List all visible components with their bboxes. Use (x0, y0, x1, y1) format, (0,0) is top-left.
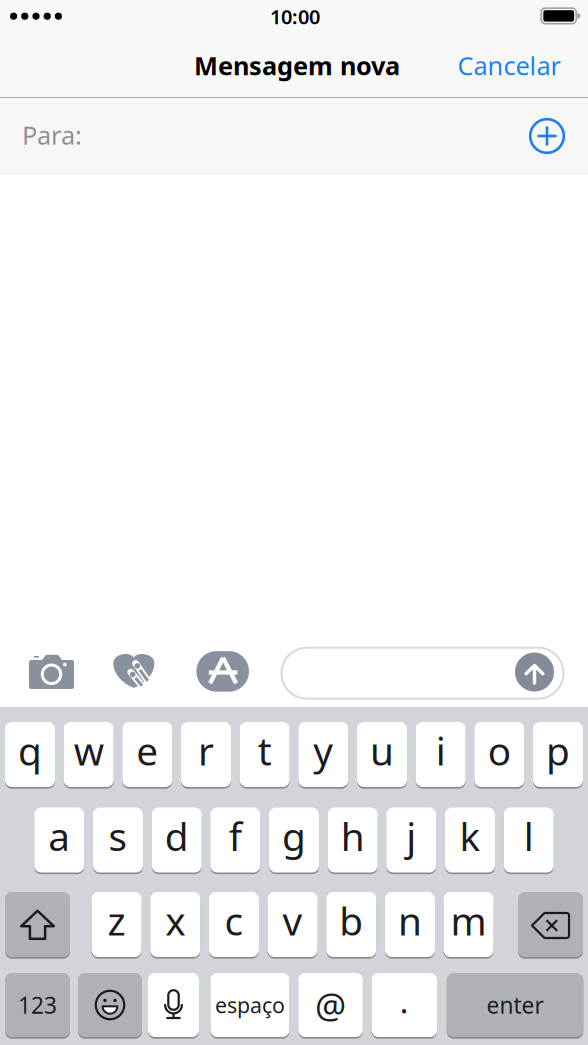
button[interactable]: q (5, 721, 55, 788)
button[interactable]: o (474, 721, 524, 788)
button[interactable]: Emoji (78, 972, 142, 1038)
button[interactable]: u (357, 721, 407, 788)
staticText: 10:00 (270, 3, 320, 30)
staticText: l (524, 810, 534, 862)
staticText: @ (315, 982, 346, 1028)
staticText: a (48, 810, 70, 862)
button[interactable]: z (92, 891, 142, 958)
button[interactable]: Camera (23, 644, 79, 700)
staticText: Cancelar (457, 49, 560, 82)
staticText: o (488, 725, 511, 776)
staticText: j (406, 810, 416, 862)
button[interactable]: l (504, 806, 554, 873)
staticText: p (546, 725, 570, 776)
button[interactable]: n (385, 891, 435, 958)
staticText: u (370, 725, 394, 776)
button[interactable]: r (181, 721, 231, 788)
button[interactable]: h (328, 806, 378, 873)
button[interactable]: enter (447, 972, 583, 1038)
staticText: espaço (215, 991, 285, 1019)
staticText: enter (486, 990, 543, 1020)
staticText: h (341, 810, 365, 862)
staticText: b (339, 895, 363, 946)
button[interactable]: g (269, 806, 319, 873)
staticText: 123 (18, 990, 57, 1020)
staticText: Para: (22, 118, 82, 152)
button[interactable]: s (93, 806, 143, 873)
button[interactable]: d (152, 806, 202, 873)
button[interactable]: f (210, 806, 260, 873)
button[interactable]: m (444, 891, 494, 958)
staticText: m (451, 895, 487, 946)
button[interactable]: y (298, 721, 348, 788)
staticText: t (258, 725, 272, 776)
button[interactable]: e (122, 721, 172, 788)
staticText: k (459, 810, 480, 862)
button[interactable]: p (533, 721, 583, 788)
button[interactable]: espaço (210, 972, 289, 1038)
button[interactable]: x (150, 891, 200, 958)
button[interactable]: j (386, 806, 436, 873)
staticText: r (198, 725, 214, 776)
button[interactable]: t (240, 721, 290, 788)
staticText: e (136, 725, 158, 776)
staticText: d (165, 810, 189, 862)
button[interactable]: v (268, 891, 318, 958)
staticText: g (282, 810, 306, 862)
staticText: f (229, 810, 242, 862)
button[interactable]: i (416, 721, 466, 788)
button[interactable]: c (209, 891, 259, 958)
button[interactable]: 123 (5, 972, 70, 1038)
button[interactable]: a (34, 806, 84, 873)
staticText: c (224, 895, 243, 946)
staticText: n (398, 895, 422, 946)
staticText: Mensagem nova (194, 49, 400, 82)
button[interactable]: @ (298, 972, 363, 1038)
button[interactable]: Digital Touch (109, 645, 161, 697)
button[interactable]: Delete (518, 891, 583, 958)
button[interactable]: k (445, 806, 495, 873)
button[interactable]: w (64, 721, 114, 788)
staticText: i (436, 725, 446, 776)
staticText: q (18, 725, 42, 776)
staticText: y (313, 725, 333, 776)
button[interactable]: Shift (5, 891, 70, 958)
staticText: . (400, 980, 409, 1022)
button[interactable]: Add contact (525, 114, 569, 158)
staticText: w (74, 725, 104, 776)
staticText: s (108, 810, 127, 862)
button[interactable]: Dictate (148, 972, 199, 1038)
button[interactable]: Cancelar (457, 49, 560, 82)
button[interactable]: b (326, 891, 376, 958)
button[interactable]: . (372, 972, 437, 1038)
staticText: x (165, 895, 185, 946)
button[interactable]: App Store (195, 645, 251, 697)
staticText: z (108, 895, 126, 946)
button[interactable]: Send (515, 652, 554, 691)
staticText: v (283, 895, 303, 946)
